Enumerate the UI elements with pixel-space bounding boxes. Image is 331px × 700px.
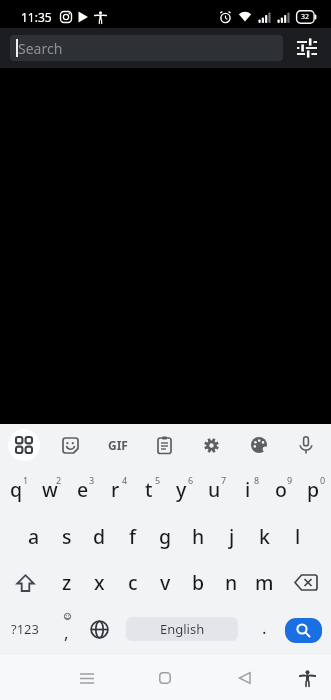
- staticText: m: [255, 569, 274, 596]
- staticText: w: [42, 476, 58, 503]
- button[interactable]: r: [99, 466, 132, 513]
- button[interactable]: s: [50, 513, 83, 559]
- button[interactable]: [285, 618, 322, 643]
- staticText: 11:35: [21, 9, 52, 25]
- button[interactable]: [291, 660, 323, 696]
- staticText: .: [262, 616, 267, 639]
- button[interactable]: [281, 559, 331, 606]
- staticText: 9: [287, 474, 293, 486]
- button[interactable]: k: [248, 513, 281, 559]
- staticText: r: [111, 476, 120, 503]
- button[interactable]: [0, 424, 47, 466]
- staticText: j: [229, 523, 235, 550]
- button[interactable]: Search: [10, 35, 283, 61]
- button[interactable]: [143, 661, 187, 695]
- button[interactable]: .: [248, 606, 281, 652]
- staticText: o: [275, 476, 287, 503]
- staticText: English: [160, 620, 205, 638]
- button[interactable]: b: [182, 559, 215, 606]
- button[interactable]: f: [116, 513, 149, 559]
- staticText: e: [77, 476, 89, 503]
- button[interactable]: o: [264, 466, 297, 513]
- button[interactable]: [47, 424, 94, 466]
- button[interactable]: q: [0, 466, 33, 513]
- staticText: 32: [301, 12, 310, 22]
- button[interactable]: l: [281, 513, 314, 559]
- staticText: c: [128, 569, 138, 596]
- staticText: q: [10, 476, 23, 503]
- button[interactable]: c: [116, 559, 149, 606]
- staticText: f: [129, 523, 136, 550]
- button[interactable]: e: [66, 466, 99, 513]
- staticText: v: [160, 569, 171, 596]
- button[interactable]: m: [248, 559, 281, 606]
- staticText: p: [307, 476, 320, 503]
- button[interactable]: i: [231, 466, 264, 513]
- staticText: x: [94, 569, 105, 596]
- button[interactable]: GIF: [94, 424, 141, 466]
- staticText: y: [176, 476, 187, 503]
- staticText: 2: [56, 474, 62, 486]
- staticText: Search: [18, 39, 63, 58]
- staticText: 0: [320, 474, 326, 486]
- button[interactable]: [65, 661, 109, 695]
- staticText: ,: [64, 621, 69, 644]
- staticText: i: [245, 476, 251, 503]
- staticText: t: [145, 476, 153, 503]
- button[interactable]: z: [50, 559, 83, 606]
- staticText: 8: [254, 474, 260, 486]
- staticText: h: [192, 523, 205, 550]
- button[interactable]: x: [83, 559, 116, 606]
- staticText: s: [62, 523, 72, 550]
- button[interactable]: w: [33, 466, 66, 513]
- button[interactable]: [283, 28, 331, 68]
- button[interactable]: English: [116, 606, 248, 652]
- staticText: 7: [221, 474, 227, 486]
- staticText: 3: [89, 474, 95, 486]
- button[interactable]: h: [182, 513, 215, 559]
- button[interactable]: j: [215, 513, 248, 559]
- button[interactable]: p: [297, 466, 330, 513]
- button[interactable]: [188, 424, 235, 466]
- staticText: u: [208, 476, 221, 503]
- button[interactable]: v: [149, 559, 182, 606]
- staticText: k: [259, 523, 270, 550]
- button[interactable]: y: [165, 466, 198, 513]
- button[interactable]: [141, 424, 188, 466]
- staticText: l: [295, 523, 301, 550]
- staticText: ?123: [11, 620, 39, 638]
- button[interactable]: [235, 424, 282, 466]
- button[interactable]: [222, 661, 266, 695]
- staticText: GIF: [108, 437, 128, 453]
- staticText: 4: [122, 474, 128, 486]
- staticText: b: [192, 569, 205, 596]
- staticText: 6: [188, 474, 194, 486]
- staticText: n: [225, 569, 238, 596]
- button[interactable]: d: [83, 513, 116, 559]
- button[interactable]: t: [132, 466, 165, 513]
- button[interactable]: u: [198, 466, 231, 513]
- button[interactable]: n: [215, 559, 248, 606]
- button[interactable]: ?123: [0, 606, 50, 652]
- button[interactable]: [83, 606, 116, 652]
- staticText: a: [28, 523, 40, 550]
- staticText: 5: [155, 474, 161, 486]
- button[interactable]: ,: [50, 606, 83, 652]
- staticText: d: [93, 523, 106, 550]
- button[interactable]: [282, 424, 329, 466]
- button[interactable]: [0, 559, 50, 606]
- staticText: g: [159, 523, 172, 550]
- staticText: z: [62, 569, 72, 596]
- button[interactable]: g: [149, 513, 182, 559]
- staticText: 1: [23, 474, 29, 486]
- button[interactable]: a: [17, 513, 50, 559]
